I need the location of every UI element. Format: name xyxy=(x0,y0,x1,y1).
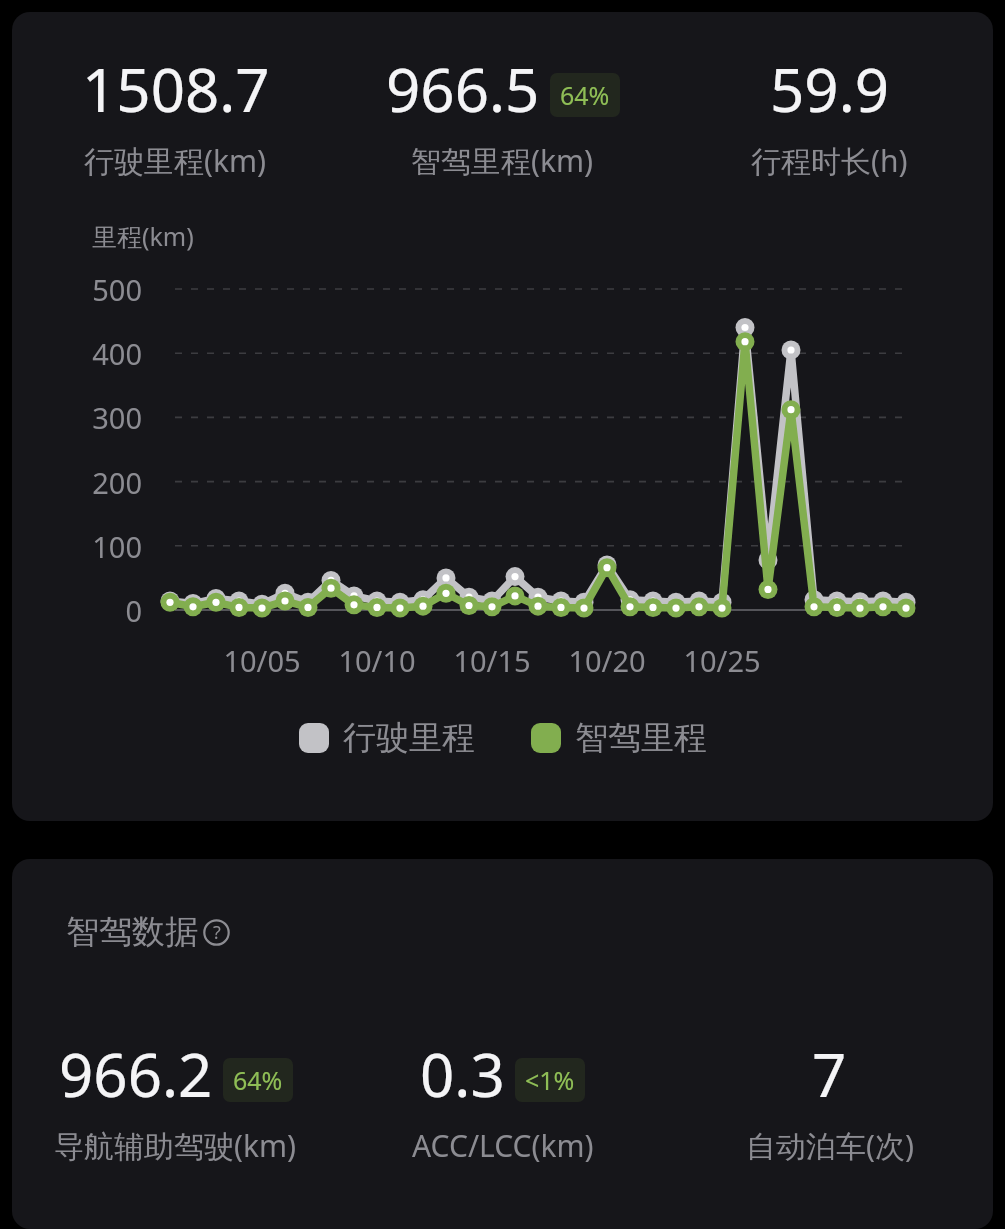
staticText: 行驶里程(km) xyxy=(84,140,267,181)
staticText: 400 xyxy=(12,334,142,373)
staticText: 10/15 xyxy=(432,641,552,680)
staticText: 自动泊车(次) xyxy=(746,1125,914,1166)
staticText: 里程(km) xyxy=(92,219,194,253)
staticText: 0 xyxy=(12,591,142,630)
staticText: 智驾里程(km) xyxy=(411,140,594,181)
staticText: 64% xyxy=(233,1063,283,1097)
staticText: 10/05 xyxy=(202,641,322,680)
staticText: 100 xyxy=(12,527,142,566)
staticText: 966.5 xyxy=(386,48,540,130)
staticText: 智驾里程 xyxy=(575,717,707,759)
staticText: ACC/LCC(km) xyxy=(412,1125,594,1166)
button[interactable]: 1508.7 xyxy=(12,48,339,181)
button[interactable]: 966.2 xyxy=(12,1033,339,1166)
staticText: 10/25 xyxy=(662,641,782,680)
staticText: 966.2 xyxy=(59,1033,213,1115)
button[interactable]: 行驶里程 xyxy=(299,717,475,759)
staticText: 10/20 xyxy=(547,641,667,680)
staticText: 200 xyxy=(12,463,142,502)
staticText: 行程时长(h) xyxy=(751,140,908,181)
button[interactable]: 7 xyxy=(666,1033,993,1166)
staticText: 500 xyxy=(12,270,142,309)
staticText: <1% xyxy=(525,1063,575,1097)
staticText: 导航辅助驾驶(km) xyxy=(54,1125,297,1166)
button[interactable]: 智驾数据 xyxy=(66,911,230,953)
button[interactable]: 智驾里程 xyxy=(531,717,707,759)
button[interactable]: 966.5 xyxy=(339,48,666,181)
staticText: 59.9 xyxy=(770,48,890,130)
staticText: 1508.7 xyxy=(82,48,270,130)
other: 说明 xyxy=(203,919,230,946)
staticText: 智驾数据 xyxy=(66,911,198,953)
staticText: 7 xyxy=(812,1033,847,1115)
staticText: ? xyxy=(213,920,221,945)
staticText: 10/10 xyxy=(317,641,437,680)
button[interactable]: 59.9 xyxy=(666,48,993,181)
button[interactable]: 0.3 xyxy=(339,1033,666,1166)
staticText: 64% xyxy=(560,78,610,112)
staticText: 行驶里程 xyxy=(343,717,475,759)
staticText: 0.3 xyxy=(420,1033,505,1115)
staticText: 300 xyxy=(12,398,142,437)
